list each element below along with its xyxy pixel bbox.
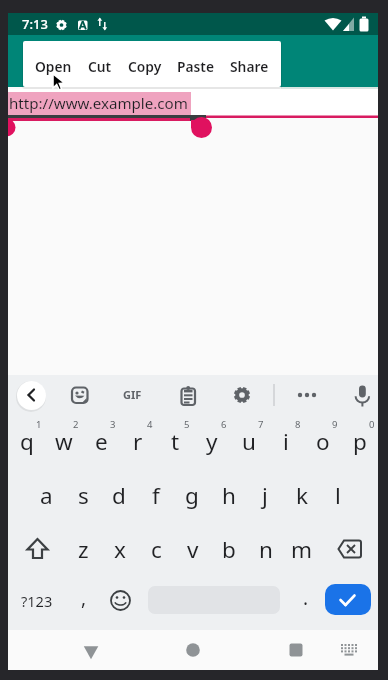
button[interactable] (332, 632, 368, 668)
button[interactable]: r (120, 418, 156, 465)
staticText: u (242, 426, 256, 457)
button[interactable]: p (342, 418, 378, 465)
staticText: Share (230, 57, 269, 76)
button[interactable]: h (211, 471, 247, 519)
button[interactable]: d (101, 471, 137, 519)
staticText: e (95, 426, 108, 457)
staticText: r (133, 426, 143, 457)
button[interactable]: g (174, 471, 210, 519)
staticText: a (40, 480, 53, 511)
staticText: 2 (73, 418, 79, 431)
staticText: , (81, 585, 87, 611)
button[interactable]: j (247, 471, 283, 519)
button[interactable]: i (268, 418, 304, 465)
staticText: 4 (147, 418, 153, 431)
staticText: h (222, 480, 236, 511)
button[interactable]: e (83, 418, 119, 465)
button[interactable] (70, 632, 110, 668)
button[interactable] (8, 89, 378, 118)
staticText: i (283, 426, 289, 457)
staticText: 3 (110, 418, 116, 431)
staticText: Paste (177, 57, 215, 76)
button[interactable]: , (66, 578, 102, 618)
button[interactable]: c (138, 525, 174, 573)
button[interactable]: f (138, 471, 174, 519)
button[interactable] (8, 35, 378, 87)
staticText: c (151, 534, 162, 565)
button[interactable]: Paste (175, 47, 216, 85)
staticText: q (20, 426, 34, 457)
staticText: ?123 (21, 591, 53, 611)
staticText: 6 (221, 418, 227, 431)
staticText: l (335, 480, 341, 511)
button[interactable]: a (28, 471, 64, 519)
staticText: 9 (332, 418, 338, 431)
staticText: g (185, 480, 199, 511)
staticText: http://www.example.com (9, 93, 188, 114)
button[interactable] (325, 584, 371, 615)
staticText: t (171, 426, 180, 457)
button[interactable]: n (248, 525, 284, 573)
button[interactable]: . (288, 578, 324, 618)
staticText: y (206, 426, 218, 457)
staticText: b (222, 534, 236, 565)
staticText: z (78, 534, 89, 565)
button[interactable]: Cut (84, 47, 115, 85)
staticText: s (78, 480, 89, 511)
button[interactable]: v (175, 525, 211, 573)
button[interactable]: GIF (118, 381, 146, 408)
staticText: x (114, 534, 126, 565)
staticText: Open (35, 57, 72, 76)
button[interactable]: o (305, 418, 341, 465)
staticText: w (55, 426, 73, 457)
staticText: 0 (369, 418, 375, 431)
button[interactable]: s (65, 471, 101, 519)
button[interactable]: m (284, 525, 320, 573)
staticText: Cut (88, 57, 112, 76)
button[interactable]: l (320, 471, 356, 519)
button[interactable]: q (9, 418, 45, 465)
staticText: 1 (36, 418, 42, 431)
staticText: o (316, 426, 330, 457)
button[interactable]: k (284, 471, 320, 519)
button[interactable] (276, 632, 316, 668)
button[interactable]: Open (33, 47, 74, 85)
button[interactable]: y (194, 418, 230, 465)
button[interactable]: Copy (124, 47, 165, 85)
staticText: Copy (128, 57, 162, 76)
button[interactable]: x (102, 525, 138, 573)
staticText: j (262, 480, 268, 511)
button[interactable] (173, 632, 213, 668)
button[interactable] (17, 381, 46, 410)
staticText: v (187, 534, 199, 565)
staticText: 5 (184, 418, 190, 431)
button[interactable]: z (65, 525, 101, 573)
staticText: f (152, 480, 160, 511)
staticText: . (303, 585, 309, 611)
staticText: GIF (123, 387, 142, 402)
button[interactable]: ?123 (16, 585, 57, 617)
staticText: n (259, 534, 273, 565)
button[interactable]: u (231, 418, 267, 465)
staticText: 8 (295, 418, 301, 431)
button[interactable]: w (46, 418, 82, 465)
staticText: p (353, 426, 367, 457)
staticText: k (296, 480, 309, 511)
staticText: d (112, 480, 126, 511)
staticText: m (291, 534, 313, 565)
staticText: 7 (258, 418, 264, 431)
button[interactable]: b (211, 525, 247, 573)
button[interactable]: Share (227, 47, 271, 85)
button[interactable]: t (157, 418, 193, 465)
staticText: 7:13 (22, 15, 48, 33)
